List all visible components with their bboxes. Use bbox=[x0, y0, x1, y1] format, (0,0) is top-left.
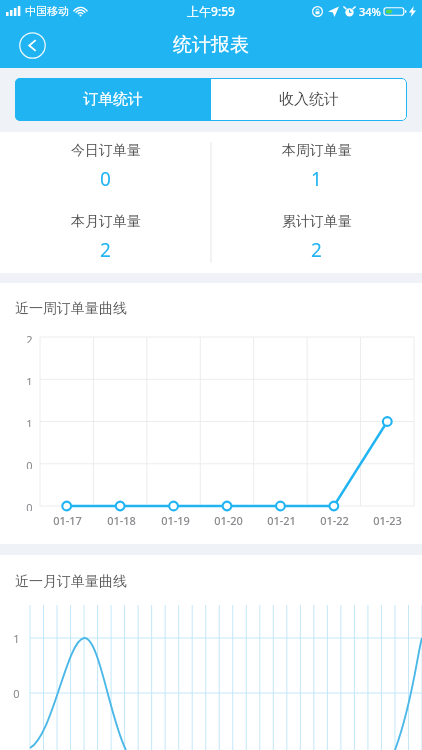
staticText: 累计订单量 bbox=[282, 213, 352, 231]
button[interactable]: 本月订单量 bbox=[0, 202, 211, 273]
staticText: 0 bbox=[100, 166, 111, 192]
staticText: 01-18 bbox=[107, 513, 136, 528]
staticText: 本月订单量 bbox=[71, 213, 141, 231]
button[interactable]: 本周订单量 bbox=[211, 132, 422, 202]
staticText: 统计报表 bbox=[173, 33, 249, 57]
staticText: 2 bbox=[26, 332, 33, 343]
button[interactable]: 收入统计 bbox=[211, 78, 407, 121]
staticText: 1 bbox=[26, 416, 33, 427]
staticText: 2 bbox=[311, 237, 322, 263]
staticText: 0 bbox=[26, 500, 33, 511]
staticText: 近一月订单量曲线 bbox=[15, 573, 127, 591]
staticText: 收入统计 bbox=[279, 90, 339, 109]
button[interactable]: 订单统计 bbox=[15, 78, 211, 121]
staticText: 上午9:59 bbox=[187, 3, 235, 19]
staticText: 01-23 bbox=[373, 513, 402, 528]
staticText: 今日订单量 bbox=[71, 142, 141, 160]
staticText: 1 bbox=[311, 166, 322, 192]
staticText: 订单统计 bbox=[83, 90, 143, 109]
staticText: 01-19 bbox=[161, 513, 190, 528]
staticText: 1 bbox=[13, 631, 20, 646]
staticText: 34% bbox=[359, 4, 381, 19]
staticText: 01-20 bbox=[214, 513, 243, 528]
staticText: 01-22 bbox=[320, 513, 349, 528]
button[interactable]: Back bbox=[14, 27, 50, 63]
staticText: 2 bbox=[100, 237, 111, 263]
staticText: 01-17 bbox=[53, 513, 82, 528]
staticText: 1 bbox=[26, 374, 33, 385]
staticText: 本周订单量 bbox=[282, 142, 352, 160]
staticText: 0 bbox=[26, 458, 33, 469]
staticText: 近一周订单量曲线 bbox=[15, 300, 127, 318]
staticText: 0 bbox=[13, 686, 20, 701]
button[interactable]: 今日订单量 bbox=[0, 132, 211, 202]
staticText: 01-21 bbox=[267, 513, 296, 528]
button[interactable]: 累计订单量 bbox=[211, 202, 422, 273]
staticText: 中国移动 bbox=[25, 4, 69, 18]
